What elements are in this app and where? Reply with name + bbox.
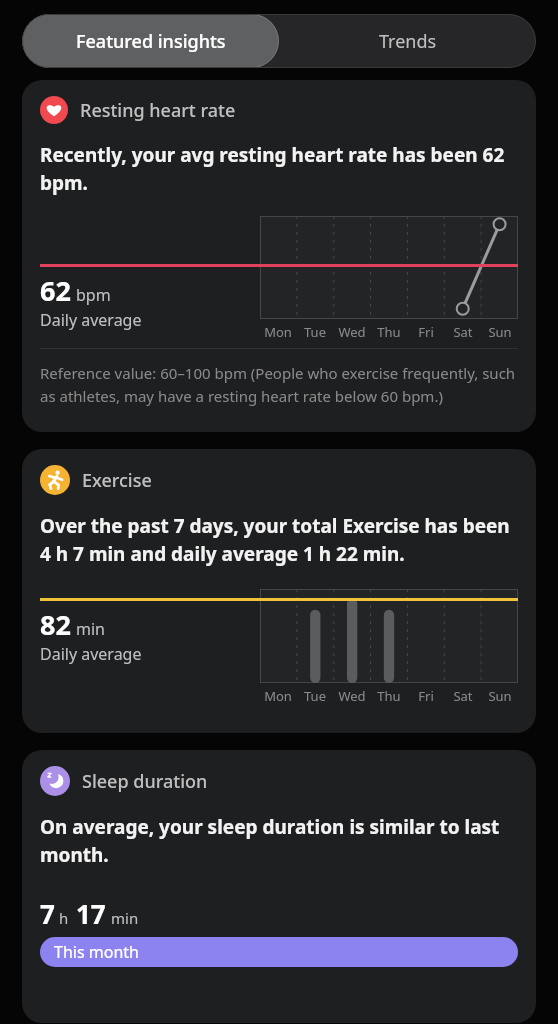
staticText: Fri <box>418 687 434 705</box>
staticText: 82 <box>40 606 71 643</box>
button[interactable]: Featured insights <box>22 14 279 68</box>
staticText: Resting heart rate <box>80 98 236 123</box>
staticText: Sat <box>453 687 473 705</box>
other: Exercise <box>40 465 70 495</box>
staticText: Mon <box>264 687 292 705</box>
staticText: Wed <box>338 687 366 705</box>
other: Resting heart rate <box>40 96 68 124</box>
staticText: Thu <box>377 687 401 705</box>
staticText: Over the past 7 days, your total Exercis… <box>40 513 518 567</box>
staticText: Fri <box>418 323 434 341</box>
staticText: Sleep duration <box>82 769 208 794</box>
staticText: Sun <box>488 323 512 341</box>
button[interactable]: Resting heart rate <box>22 80 536 432</box>
staticText: Tue <box>304 323 326 341</box>
staticText: Sun <box>488 687 512 705</box>
staticText: 62 <box>40 272 71 309</box>
other: Sleep duration <box>40 766 70 796</box>
staticText: bpm <box>76 284 111 306</box>
staticText: Thu <box>377 323 401 341</box>
staticText: Recently, your avg resting heart rate ha… <box>40 142 518 196</box>
staticText: min <box>76 618 105 640</box>
staticText: Featured insights <box>76 29 226 54</box>
staticText: On average, your sleep duration is simil… <box>40 814 518 868</box>
button[interactable]: Sleep duration <box>22 750 536 1023</box>
staticText: Daily average <box>40 643 142 665</box>
staticText: Mon <box>264 323 292 341</box>
staticText: 7 <box>40 896 55 931</box>
staticText: min <box>111 908 139 928</box>
staticText: h <box>59 908 69 928</box>
staticText: Tue <box>304 687 326 705</box>
button[interactable]: Exercise <box>22 449 536 733</box>
button[interactable]: Trends <box>279 14 536 68</box>
staticText: This month <box>54 941 139 963</box>
staticText: Exercise <box>82 468 152 493</box>
staticText: 17 <box>76 896 106 931</box>
staticText: Reference value: 60–100 bpm (People who … <box>40 363 518 406</box>
staticText: Wed <box>338 323 366 341</box>
staticText: Sat <box>453 323 473 341</box>
staticText: Trends <box>379 29 437 54</box>
button[interactable]: This month <box>40 937 518 967</box>
staticText: Daily average <box>40 309 142 331</box>
